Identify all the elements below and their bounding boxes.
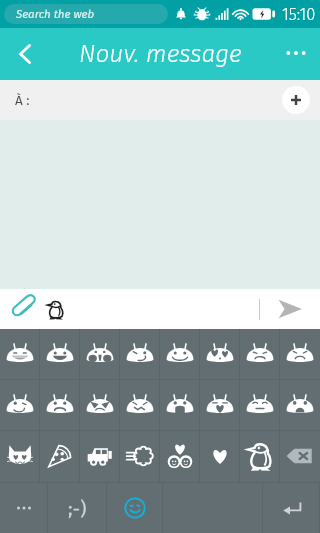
button[interactable]: Emoji 1: [0, 329, 40, 379]
button[interactable]: Emoji 4: [120, 329, 160, 379]
button[interactable]: Emoji 5: [160, 329, 200, 379]
button[interactable]: Search the web: [4, 4, 168, 24]
button[interactable]: Emoji 10: [40, 380, 80, 430]
button[interactable]: Emoji 13: [160, 380, 200, 430]
button[interactable]: Emoji 6: [200, 329, 240, 379]
staticText: À :: [15, 92, 30, 108]
button[interactable]: Emoji 9: [0, 380, 40, 430]
button[interactable]: Enter: [263, 483, 320, 533]
button[interactable]: Emoji 23: [240, 431, 280, 482]
button[interactable]: Smileys: [48, 483, 107, 533]
button[interactable]: Emoji 21: [160, 431, 200, 482]
button[interactable]: Emoji keyboard: [107, 483, 163, 533]
button[interactable]: Emoji 14: [200, 380, 240, 430]
button[interactable]: Back: [0, 28, 50, 80]
button[interactable]: Emoji: [36, 290, 74, 328]
button[interactable]: Emoji 18: [40, 431, 80, 482]
button[interactable]: More: [0, 483, 48, 533]
button[interactable]: Attach file: [4, 290, 42, 328]
button[interactable]: Emoji 17: [0, 431, 40, 482]
button[interactable]: Emoji 3: [80, 329, 120, 379]
button[interactable]: Send: [260, 289, 320, 329]
staticText: 15:10: [282, 5, 316, 25]
staticText: Search the web: [16, 7, 95, 21]
button[interactable]: Add recipient: [282, 86, 310, 114]
button[interactable]: Emoji 2: [40, 329, 80, 379]
button[interactable]: Emoji 19: [80, 431, 120, 482]
button[interactable]: Emoji 8: [280, 329, 320, 379]
button[interactable]: Emoji 20: [120, 431, 160, 482]
button[interactable]: Emoji 11: [80, 380, 120, 430]
button[interactable]: Emoji 15: [240, 380, 280, 430]
button[interactable]: Emoji 7: [240, 329, 280, 379]
button[interactable]: Emoji 16: [280, 380, 320, 430]
button[interactable]: More options: [272, 27, 320, 79]
staticText: ;-): [68, 497, 87, 520]
button[interactable]: Emoji 12: [120, 380, 160, 430]
staticText: Nouv. message: [79, 39, 242, 68]
button[interactable]: Emoji 24: [280, 431, 320, 482]
button[interactable]: Emoji 22: [200, 431, 240, 482]
